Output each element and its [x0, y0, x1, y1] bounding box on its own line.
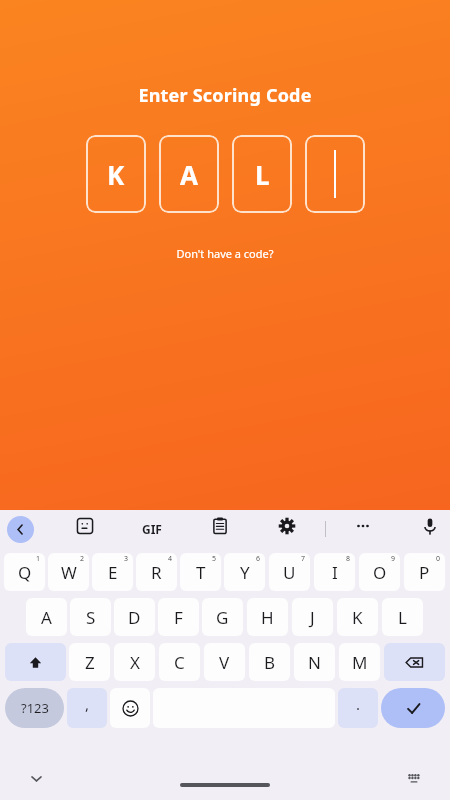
button[interactable]: H [247, 598, 288, 636]
staticText: S [86, 606, 96, 629]
staticText: A [180, 157, 198, 192]
staticText: L [255, 157, 270, 192]
staticText: Don't have a code? [176, 246, 274, 261]
staticText: O [373, 561, 387, 584]
staticText: 8 [346, 554, 351, 564]
staticText: B [264, 651, 276, 674]
staticText: V [219, 651, 230, 674]
button[interactable]: U [269, 553, 310, 591]
button[interactable]: . [338, 688, 378, 728]
button[interactable]: V [204, 643, 245, 681]
button[interactable]: Change keyboard [400, 764, 428, 792]
button[interactable]: L [382, 598, 423, 636]
button[interactable]: Enter [381, 688, 445, 728]
staticText: Q [18, 561, 32, 584]
staticText: K [352, 606, 363, 629]
staticText: L [398, 606, 407, 629]
staticText: J [310, 606, 315, 629]
staticText: 6 [256, 554, 261, 564]
staticText: 0 [436, 554, 441, 564]
button[interactable]: A [26, 598, 67, 636]
button[interactable]: I [314, 553, 355, 591]
staticText: 1 [36, 554, 41, 564]
button[interactable]: R [136, 553, 177, 591]
staticText: D [128, 606, 141, 629]
staticText: I [332, 561, 338, 584]
staticText: . [356, 694, 361, 714]
button[interactable]: , [67, 688, 107, 728]
staticText: , [85, 694, 90, 714]
staticText: Enter Scoring Code [138, 83, 312, 108]
staticText: 2 [80, 554, 85, 564]
button[interactable]: L [232, 135, 292, 213]
button[interactable]: W [48, 553, 89, 591]
button[interactable]: D [114, 598, 155, 636]
staticText: N [308, 651, 321, 674]
button[interactable]: Z [69, 643, 110, 681]
staticText: G [216, 606, 229, 629]
staticText: F [174, 606, 183, 629]
staticText: Z [85, 651, 95, 674]
staticText: U [283, 561, 296, 584]
button[interactable]: K [337, 598, 378, 636]
staticText: ?123 [21, 699, 49, 717]
button[interactable]: Emoji [110, 688, 150, 728]
button[interactable]: G [202, 598, 243, 636]
staticText: 3 [124, 554, 129, 564]
button[interactable]: Y [224, 553, 265, 591]
staticText: 5 [212, 554, 217, 564]
staticText: GIF [142, 521, 162, 537]
button[interactable]: B [249, 643, 290, 681]
staticText: E [108, 561, 118, 584]
staticText: 4 [168, 554, 173, 564]
button[interactable]: Voice input [414, 510, 446, 542]
button[interactable]: Hide keyboard [22, 764, 50, 792]
staticText: X [130, 651, 140, 674]
button[interactable]: M [339, 643, 380, 681]
staticText: M [352, 651, 368, 674]
button[interactable]: O [359, 553, 400, 591]
button[interactable]: A [159, 135, 219, 213]
staticText: 7 [301, 554, 306, 564]
button[interactable]: P [404, 553, 445, 591]
button[interactable]: N [294, 643, 335, 681]
button[interactable]: Stickers [69, 510, 101, 542]
staticText: A [41, 606, 52, 629]
button[interactable]: Q [4, 553, 45, 591]
staticText: H [261, 606, 274, 629]
button[interactable]: Clipboard [204, 510, 236, 542]
button[interactable]: S [70, 598, 111, 636]
staticText: K [107, 157, 125, 192]
button[interactable]: T [180, 553, 221, 591]
button[interactable]: Settings [271, 510, 303, 542]
staticText: T [196, 561, 206, 584]
button[interactable]: X [114, 643, 155, 681]
staticText: R [151, 561, 162, 584]
staticText: Y [240, 561, 250, 584]
button[interactable]: ?123 [5, 688, 64, 728]
button[interactable]: GIF [136, 513, 168, 545]
button[interactable]: Back [7, 516, 34, 543]
button[interactable]: More options [347, 510, 379, 542]
staticText: W [61, 561, 77, 584]
button[interactable]: Don't have a code? [170, 243, 280, 264]
staticText: 9 [391, 554, 396, 564]
button[interactable]: Shift [5, 643, 66, 681]
button[interactable]: C [159, 643, 200, 681]
button[interactable]: J [292, 598, 333, 636]
button[interactable]: Backspace [384, 643, 445, 681]
button[interactable]: E [92, 553, 133, 591]
staticText: P [419, 561, 430, 584]
button[interactable]: K [86, 135, 146, 213]
button[interactable]: F [158, 598, 199, 636]
staticText: C [174, 651, 185, 674]
button[interactable] [305, 135, 365, 213]
